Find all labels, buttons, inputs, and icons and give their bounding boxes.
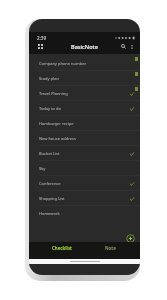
- button[interactable]: Sky: [29, 161, 140, 176]
- button[interactable]: New house address: [29, 131, 140, 146]
- staticText: Bucket List: [39, 151, 60, 156]
- staticText: Travel Planning: [39, 91, 68, 96]
- staticText: Today to do: [39, 106, 61, 111]
- button[interactable]: Bucket List: [29, 146, 140, 161]
- staticText: Homework: [39, 211, 60, 216]
- button[interactable]: Travel Planning: [29, 86, 140, 101]
- staticText: Hamburger recipe: [39, 121, 74, 126]
- staticText: Company phone number: [39, 61, 87, 66]
- button[interactable]: Hamburger recipe: [29, 116, 140, 131]
- button[interactable]: Menu: [36, 42, 45, 51]
- button[interactable]: Study plan: [29, 71, 140, 86]
- button[interactable]: More options: [128, 43, 136, 51]
- button[interactable]: Add note: [126, 234, 135, 243]
- button[interactable]: Company phone number: [29, 56, 140, 71]
- staticText: Checklist: [52, 245, 73, 251]
- button[interactable]: Conference: [29, 176, 140, 191]
- button[interactable]: Shopping List: [29, 191, 140, 206]
- button[interactable]: Note: [86, 242, 134, 253]
- staticText: Note: [105, 245, 116, 251]
- staticText: Shopping List: [39, 196, 65, 201]
- staticText: Conference: [39, 181, 61, 186]
- button[interactable]: Search: [119, 42, 128, 51]
- staticText: BasicNote: [71, 43, 98, 51]
- button[interactable]: Homework: [29, 206, 140, 221]
- staticText: Study plan: [39, 76, 59, 81]
- button[interactable]: Checklist: [38, 242, 86, 253]
- staticText: New house address: [39, 136, 76, 141]
- staticText: Sky: [39, 166, 46, 171]
- button[interactable]: Today to do: [29, 101, 140, 116]
- staticText: 2:39: [37, 35, 47, 41]
